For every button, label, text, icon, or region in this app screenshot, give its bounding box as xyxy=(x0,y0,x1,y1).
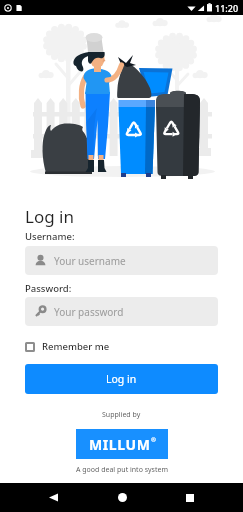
staticText: Remember me xyxy=(42,340,110,353)
staticText: Supplied by xyxy=(102,410,141,420)
staticText: Username: xyxy=(25,230,75,243)
button[interactable]: Your password xyxy=(25,297,218,326)
button[interactable]: MILLUM xyxy=(76,429,168,459)
button[interactable]: Recent apps xyxy=(174,483,206,512)
button[interactable]: Remember me xyxy=(25,338,110,355)
button[interactable]: Log in xyxy=(25,364,218,394)
staticText: 11:20 xyxy=(215,2,239,14)
button[interactable]: Your username xyxy=(25,246,218,275)
staticText: Password: xyxy=(25,282,72,295)
staticText: Log in xyxy=(25,205,74,228)
staticText: Your password xyxy=(54,305,124,319)
staticText: Your username xyxy=(54,254,126,268)
button[interactable]: Home xyxy=(106,483,138,512)
button[interactable]: Back xyxy=(37,483,69,512)
staticText: MILLUM xyxy=(89,435,151,454)
staticText: Log in xyxy=(106,372,137,386)
staticText: A good deal put into system xyxy=(76,465,168,475)
staticText: ® xyxy=(151,436,156,444)
